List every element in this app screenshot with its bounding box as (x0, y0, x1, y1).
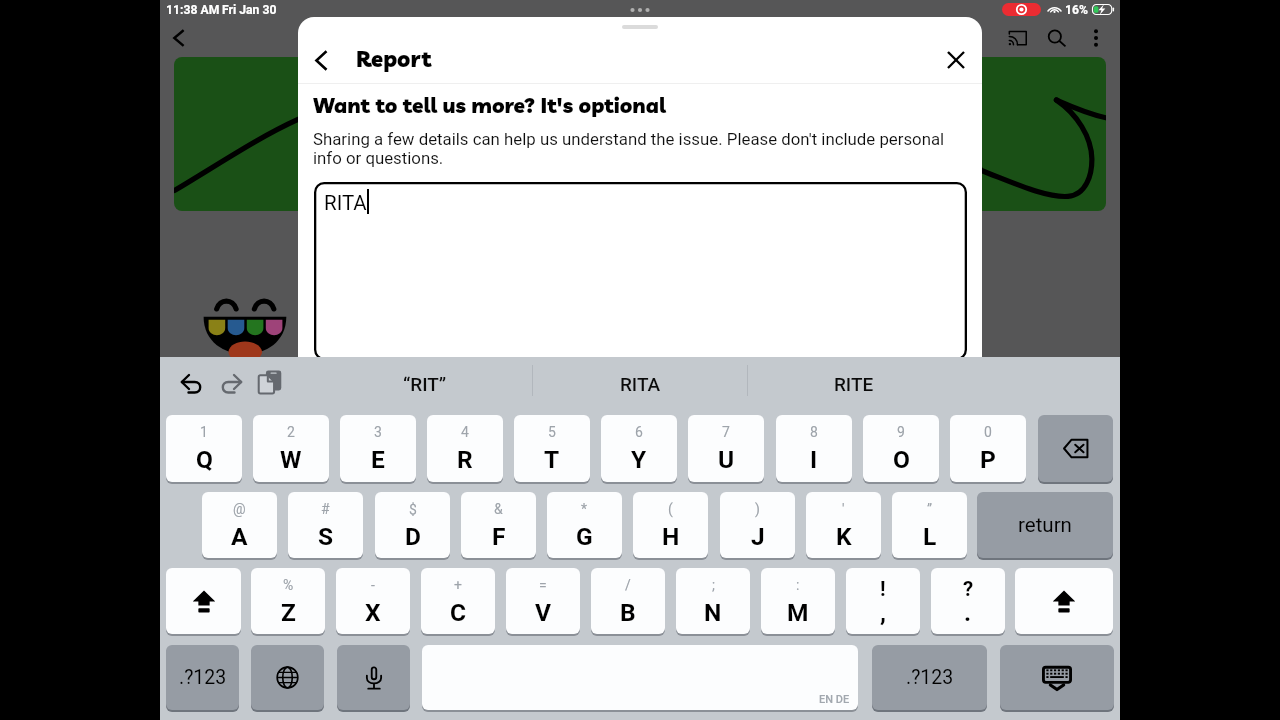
button[interactable]: ? (931, 568, 1005, 634)
staticText: 16% (1065, 3, 1088, 17)
staticText: : (796, 577, 800, 593)
button[interactable]: Next keyboard (251, 645, 324, 710)
staticText: P (980, 445, 996, 474)
button[interactable]: Redo (217, 369, 245, 397)
button[interactable]: / (591, 568, 665, 634)
staticText: Z (281, 598, 296, 627)
staticText: X (365, 598, 381, 627)
button[interactable]: Back (300, 39, 342, 81)
button[interactable]: RITA (314, 182, 967, 360)
staticText: 2 (287, 424, 295, 440)
staticText: return (1018, 513, 1072, 537)
button[interactable]: % (251, 568, 325, 634)
button[interactable]: Undo (177, 369, 205, 397)
staticText: ' (842, 501, 845, 517)
staticText: 7 (722, 424, 730, 440)
button[interactable]: 0 (950, 415, 1026, 482)
staticText: V (535, 598, 552, 627)
button[interactable]: ; (676, 568, 750, 634)
button[interactable]: ) (720, 492, 795, 558)
button[interactable]: .?123 (872, 645, 987, 710)
button[interactable]: 4 (427, 415, 503, 482)
button[interactable]: Close (935, 39, 977, 81)
staticText: E (371, 445, 385, 474)
staticText: + (454, 577, 462, 593)
staticText: - (371, 577, 375, 593)
staticText: D (405, 522, 421, 551)
button[interactable]: Shift (166, 568, 241, 634)
staticText: ; (712, 577, 715, 593)
staticText: .?123 (906, 666, 954, 689)
button[interactable]: RITE (759, 357, 949, 410)
button[interactable]: $ (375, 492, 450, 558)
staticText: ” (927, 501, 933, 517)
button[interactable]: = (506, 568, 580, 634)
staticText: O (893, 445, 910, 474)
button[interactable]: ! (846, 568, 920, 634)
button[interactable]: Dictate (337, 645, 410, 710)
button[interactable]: 3 (340, 415, 416, 482)
staticText: 1 (200, 424, 208, 440)
staticText: & (494, 501, 503, 517)
button[interactable]: RITA (545, 357, 735, 410)
staticText: G (576, 522, 593, 551)
staticText: A (231, 522, 248, 551)
button[interactable]: - (336, 568, 410, 634)
staticText: N (704, 598, 722, 627)
button[interactable]: Shift (1015, 568, 1113, 634)
button[interactable]: & (461, 492, 536, 558)
button[interactable]: ” (892, 492, 967, 558)
button[interactable]: @ (202, 492, 277, 558)
staticText: I (810, 445, 818, 474)
button[interactable]: Space (422, 645, 858, 710)
button[interactable]: 7 (688, 415, 764, 482)
button[interactable]: : (761, 568, 835, 634)
staticText: , (880, 598, 886, 627)
staticText: Y (631, 445, 647, 474)
button[interactable]: return (977, 492, 1113, 558)
staticText: @ (233, 501, 246, 517)
staticText: ! (880, 577, 886, 601)
staticText: / (625, 577, 631, 593)
button[interactable]: “RIT” (330, 357, 520, 410)
staticText: U (718, 445, 735, 474)
staticText: J (751, 522, 765, 551)
staticText: % (283, 577, 294, 593)
staticText: K (836, 522, 852, 551)
button[interactable]: Hide keyboard (1000, 645, 1114, 710)
staticText: Sharing a few details can help us unders… (313, 129, 953, 169)
staticText: $ (409, 501, 417, 517)
button[interactable]: 1 (166, 415, 242, 482)
button[interactable]: Paste (256, 368, 284, 396)
staticText: ) (755, 501, 760, 517)
button[interactable]: * (547, 492, 622, 558)
button[interactable]: ' (806, 492, 881, 558)
staticText: 3 (374, 424, 382, 440)
staticText: # (321, 501, 330, 517)
button[interactable]: 5 (514, 415, 590, 482)
staticText: Report (356, 45, 432, 73)
staticText: EN DE (819, 693, 850, 706)
staticText: = (539, 577, 547, 593)
staticText: 8 (810, 424, 818, 440)
button[interactable]: 2 (253, 415, 329, 482)
staticText: M (787, 598, 809, 627)
staticText: H (662, 522, 680, 551)
button[interactable]: Cast (999, 20, 1035, 56)
staticText: T (544, 445, 560, 474)
staticText: Want to tell us more? It's optional (313, 92, 666, 118)
button[interactable]: ( (633, 492, 708, 558)
button[interactable]: Backspace (1038, 415, 1113, 482)
staticText: 4 (461, 424, 469, 440)
button[interactable]: # (288, 492, 363, 558)
button[interactable]: Search (1039, 20, 1075, 56)
button[interactable]: .?123 (166, 645, 239, 710)
staticText: S (318, 522, 334, 551)
button[interactable]: 6 (601, 415, 677, 482)
staticText: Fri Jan 30 (222, 3, 277, 17)
button[interactable]: + (421, 568, 495, 634)
button[interactable]: More options (1078, 20, 1114, 56)
button[interactable]: Back (160, 20, 196, 56)
button[interactable]: 9 (863, 415, 939, 482)
button[interactable]: 8 (776, 415, 852, 482)
